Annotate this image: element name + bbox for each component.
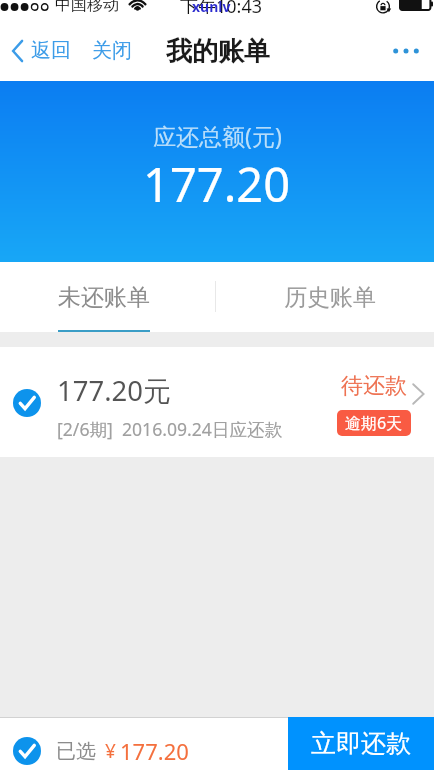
staticText: 返回 bbox=[31, 38, 71, 63]
staticText: ¥ bbox=[105, 738, 116, 764]
staticText: 立即还款 bbox=[311, 728, 411, 759]
staticText: 中国移动 bbox=[55, 0, 119, 15]
staticText: 我的账单 bbox=[166, 35, 270, 68]
staticText: 逾期6天 bbox=[345, 412, 403, 434]
staticText: 关闭 bbox=[92, 38, 132, 63]
button[interactable]: More options bbox=[384, 29, 428, 73]
staticText: 下午10:43 bbox=[180, 0, 263, 14]
staticText: 已选 bbox=[56, 739, 96, 764]
staticText: 待还款 bbox=[341, 372, 407, 400]
staticText: 历史账单 bbox=[284, 283, 376, 312]
staticText: 177.20 bbox=[120, 736, 189, 766]
button[interactable]: 历史账单 bbox=[262, 262, 398, 332]
button[interactable]: 返回 bbox=[12, 38, 71, 63]
button[interactable]: 关闭 bbox=[92, 38, 132, 63]
staticText: [2/6期] 2016.09.24日应还款 bbox=[57, 417, 283, 441]
staticText: 未还账单 bbox=[58, 283, 150, 312]
staticText: 应还总额(元) bbox=[153, 120, 282, 151]
button[interactable]: 已选 bbox=[13, 736, 189, 766]
staticText: xunlv bbox=[192, 0, 231, 16]
button[interactable]: 177.20元 bbox=[0, 347, 434, 457]
staticText: 177.20 bbox=[143, 152, 291, 216]
staticText: 177.20元 bbox=[57, 372, 171, 410]
button[interactable]: 未还账单 bbox=[36, 262, 172, 332]
button[interactable]: 立即还款 bbox=[288, 717, 434, 770]
